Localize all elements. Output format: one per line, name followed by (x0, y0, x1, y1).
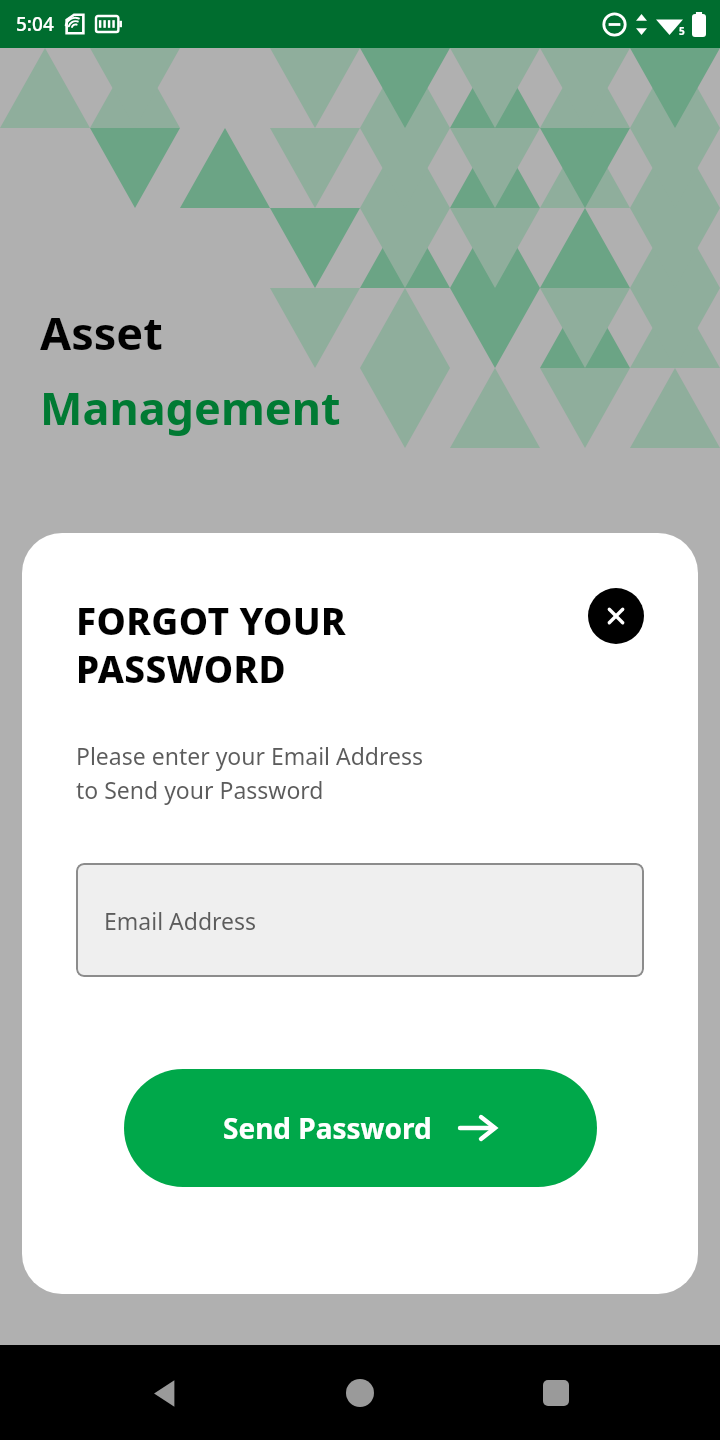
staticText: Asset (40, 302, 163, 363)
staticText: Please enter your Email Address to Send … (76, 740, 424, 805)
button[interactable]: Send Password (124, 1069, 597, 1187)
button[interactable]: Recents (524, 1361, 588, 1425)
staticText: Email Address (104, 905, 257, 936)
button[interactable]: Email Address (76, 863, 644, 977)
staticText: Management (40, 377, 341, 438)
staticText: 5:04 (16, 11, 54, 37)
staticText: Send Password (223, 1109, 432, 1147)
staticText: FORGOT YOUR PASSWORD (76, 595, 588, 694)
button[interactable]: Close (588, 588, 644, 644)
button[interactable]: Home (328, 1361, 392, 1425)
button[interactable]: Back (132, 1361, 196, 1425)
staticText: 5 (679, 24, 685, 38)
